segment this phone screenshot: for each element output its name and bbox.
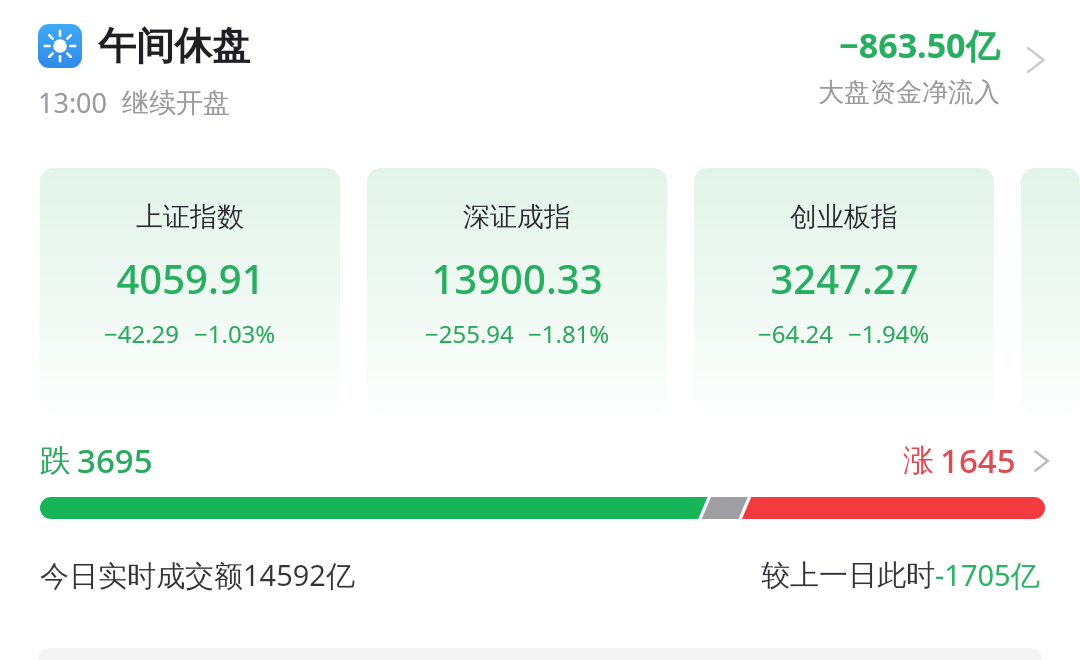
staticText: 4059.91 [116,251,265,305]
button[interactable]: 创业板指 [694,168,994,412]
staticText: −1.03% [194,317,276,350]
staticText: −1.81% [528,317,610,350]
staticText: −255.94 [425,317,514,350]
staticText: 午间休盘 [98,22,250,70]
staticText: 3247.27 [770,251,919,305]
staticText: 深证成指 [463,200,571,234]
other: 大盘资金净流入详情 [1014,39,1056,81]
button[interactable]: 深证成指 [367,168,667,412]
staticText: 跌 [40,441,71,480]
staticText: −42.29 [104,317,180,350]
staticText: 创业板指 [790,200,898,234]
staticText: 今日实时成交额14592亿 [40,555,355,595]
staticText: −64.24 [758,317,834,350]
staticText: 3695 [77,438,153,483]
staticText: 1645 [940,438,1016,483]
staticText: 涨 [903,441,934,480]
staticText: 较上一日此时 [761,557,935,594]
staticText: 上证指数 [136,200,244,234]
other: 涨跌家数详情 [1024,444,1058,478]
button[interactable]: 跌 [40,438,1058,483]
button[interactable]: 上证指数 [40,168,340,412]
staticText: −863.50亿 [839,22,1000,68]
button[interactable]: −863.50亿 [818,22,1056,109]
staticText: 13900.33 [431,251,603,305]
staticText: −1.94% [848,317,930,350]
button[interactable] [1021,168,1080,412]
staticText: -1705亿 [935,555,1040,595]
staticText: 继续开盘 [122,86,230,120]
staticText: 大盘资金净流入 [818,76,1000,109]
staticText: 13:00 [38,84,108,121]
button[interactable] [40,497,1045,519]
